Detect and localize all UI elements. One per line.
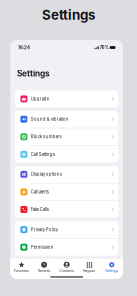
staticText: Permission — [31, 245, 54, 250]
staticText: Settings — [17, 69, 50, 79]
staticText: Privacy Policy — [31, 227, 58, 232]
staticText: Favorites — [14, 269, 29, 273]
button[interactable]: Fake Calls — [15, 201, 118, 218]
staticText: Display options — [31, 172, 62, 177]
staticText: 16:24 — [18, 45, 30, 50]
staticText: Settings — [105, 269, 118, 273]
button[interactable]: Contacts — [55, 261, 78, 274]
button[interactable]: Block numbers — [15, 128, 118, 145]
staticText: Upgrade — [31, 96, 49, 101]
button[interactable]: Keypad — [78, 261, 100, 274]
button[interactable]: Upgrade — [15, 90, 118, 107]
button[interactable]: Settings — [100, 261, 123, 274]
staticText: 76% — [100, 45, 109, 50]
button[interactable]: Call alerts — [15, 183, 118, 200]
button[interactable]: Permission — [15, 239, 118, 256]
staticText: Fake Calls — [31, 207, 49, 212]
staticText: Call Settings — [31, 152, 55, 157]
button[interactable]: Recents — [33, 261, 55, 274]
button[interactable]: Display options — [15, 166, 118, 183]
button[interactable]: Favorites — [10, 261, 33, 274]
button[interactable]: Call Settings — [15, 146, 118, 163]
staticText: Sound & vibration — [31, 117, 69, 122]
staticText: Recents — [38, 269, 51, 273]
button[interactable]: Privacy Policy — [15, 221, 118, 238]
staticText: Block numbers — [31, 134, 62, 139]
staticText: Contacts — [59, 269, 74, 273]
staticText: Settings — [42, 7, 95, 23]
button[interactable]: Sound & vibration — [15, 111, 118, 128]
staticText: Call alerts — [31, 189, 49, 194]
staticText: Keypad — [83, 269, 95, 273]
